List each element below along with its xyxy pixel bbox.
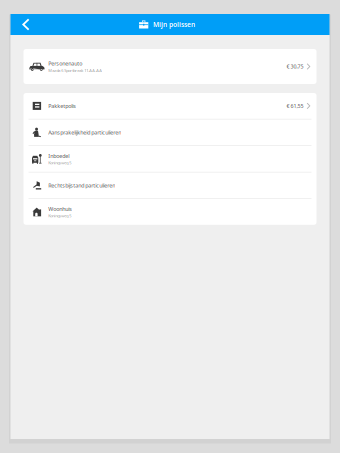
staticText: Mijn polissen [153, 20, 195, 29]
staticText: Pakketpolis [48, 102, 76, 109]
staticText: Mazda 6 Sportbreak 11-AA-AA [48, 68, 102, 73]
staticText: Rechtsbijstand particulieren [48, 182, 115, 189]
staticText: € 61,55 [286, 102, 303, 109]
button[interactable]: Back [10, 14, 41, 35]
staticText: Inboedel [48, 152, 69, 159]
button[interactable]: Aansprakelijkheid particulieren [23, 119, 316, 146]
staticText: Aansprakelijkheid particulieren [48, 129, 121, 136]
button[interactable]: Inboedel [23, 146, 316, 172]
staticText: € 30,75 [286, 63, 303, 70]
button[interactable]: Personenauto [23, 49, 316, 84]
staticText: Personenauto [48, 60, 82, 67]
staticText: Woonhuis [48, 205, 72, 212]
staticText: Koningsweg 5 [48, 213, 71, 218]
button[interactable]: Pakketpolis [23, 93, 316, 119]
staticText: Koningsweg 5 [48, 160, 71, 165]
button[interactable]: Rechtsbijstand particulieren [23, 172, 316, 199]
button[interactable]: Woonhuis [23, 199, 316, 225]
